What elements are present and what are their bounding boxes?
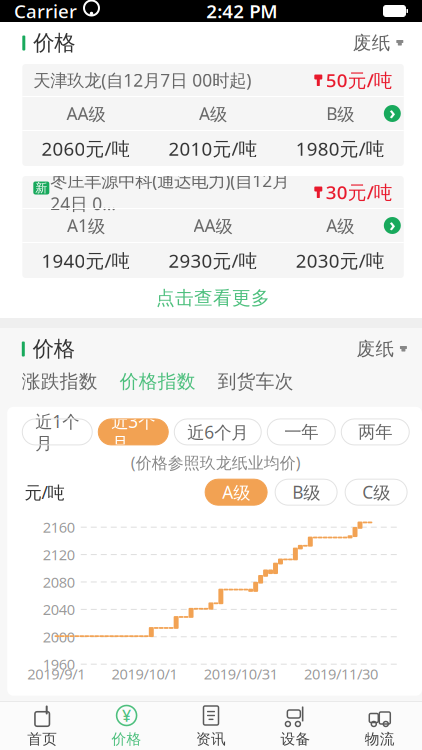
staticText: 元/吨 xyxy=(24,481,64,504)
staticText: 2000 xyxy=(43,627,75,646)
staticText: 价格 xyxy=(33,336,75,362)
staticText: 废纸 xyxy=(353,31,391,54)
staticText: 枣庄丰源中科(通达电力)(自12月24日 0… xyxy=(50,169,289,215)
staticText: 2019/10/31 xyxy=(204,664,278,684)
staticText: › xyxy=(389,101,395,124)
button[interactable]: 天津玖龙(自12月7日 00时起) xyxy=(22,64,404,166)
staticText: A级 xyxy=(222,481,250,504)
button[interactable]: 废纸 xyxy=(356,333,407,364)
button[interactable]: 近1个月 xyxy=(22,419,92,445)
staticText: 2160 xyxy=(43,517,75,537)
staticText: 2010元/吨 xyxy=(169,136,258,161)
staticText: AA级 xyxy=(194,214,233,237)
button[interactable]: 资讯 xyxy=(169,702,253,750)
staticText: C级 xyxy=(362,481,390,504)
staticText: 2120 xyxy=(43,545,75,564)
staticText: 1980元/吨 xyxy=(296,136,385,161)
staticText: A1级 xyxy=(67,214,105,237)
staticText: 设备 xyxy=(280,730,310,748)
button[interactable]: 设备 xyxy=(253,702,338,750)
staticText: 2080 xyxy=(43,572,75,592)
staticText: 2930元/吨 xyxy=(169,248,258,273)
button[interactable]: C级 xyxy=(345,479,407,505)
button[interactable]: 一年 xyxy=(267,419,335,445)
staticText: 50元/吨 xyxy=(326,68,393,92)
staticText: 首页 xyxy=(27,730,57,748)
staticText: B级 xyxy=(292,481,320,504)
staticText: 近3个月 xyxy=(111,410,155,454)
staticText: 物流 xyxy=(365,730,395,748)
button[interactable]: 到货车次 xyxy=(218,370,294,393)
staticText: 1940元/吨 xyxy=(41,248,130,273)
staticText: 2030元/吨 xyxy=(296,248,385,273)
staticText: 两年 xyxy=(358,421,392,443)
button[interactable]: A级 xyxy=(205,479,267,505)
button[interactable]: 涨跌指数 xyxy=(22,370,98,393)
staticText: 天津玖龙(自12月7日 00时起) xyxy=(33,68,251,91)
staticText: 30元/吨 xyxy=(326,180,393,204)
staticText: 2060元/吨 xyxy=(41,136,130,161)
staticText: 2040 xyxy=(43,600,75,619)
button[interactable]: 近6个月 xyxy=(174,419,261,445)
button[interactable]: 废纸 xyxy=(353,27,404,58)
staticText: 2019/9/1 xyxy=(27,664,85,684)
staticText: 近1个月 xyxy=(35,410,79,454)
staticText: 2:42 PM xyxy=(206,0,277,23)
staticText: 1960 xyxy=(43,654,75,674)
button[interactable]: 新 xyxy=(22,176,404,278)
button[interactable]: 价格指数 xyxy=(120,370,196,393)
button[interactable]: 点击查看更多 xyxy=(0,278,422,318)
staticText: › xyxy=(389,213,395,236)
staticText: A级 xyxy=(199,102,227,125)
staticText: 点击查看更多 xyxy=(156,286,270,309)
staticText: 价格 xyxy=(33,30,75,56)
staticText: AA级 xyxy=(66,102,105,125)
staticText: B级 xyxy=(326,102,354,125)
button[interactable]: 两年 xyxy=(341,419,409,445)
staticText: 一年 xyxy=(284,421,318,443)
staticText: 近6个月 xyxy=(187,420,248,443)
button[interactable]: B级 xyxy=(275,479,337,505)
staticText: 2019/11/30 xyxy=(304,664,378,684)
button[interactable]: 近3个月 xyxy=(98,419,168,445)
button[interactable]: 物流 xyxy=(338,702,422,750)
staticText: Carrier xyxy=(14,0,77,23)
staticText: 资讯 xyxy=(196,730,226,748)
button[interactable]: ¥ xyxy=(84,702,169,750)
staticText xyxy=(77,0,83,26)
staticText: 到货车次 xyxy=(218,370,294,393)
staticText: A级 xyxy=(326,214,354,237)
staticText: 新 xyxy=(35,181,47,195)
staticText: 涨跌指数 xyxy=(22,370,98,393)
staticText: 价格指数 xyxy=(120,370,196,393)
staticText: 2019/10/1 xyxy=(111,664,177,684)
staticText: 废纸 xyxy=(356,337,394,360)
staticText: (价格参照玖龙纸业均价) xyxy=(131,452,301,473)
staticText: ¥ xyxy=(122,705,131,726)
staticText: 价格 xyxy=(112,730,142,748)
button[interactable]: 首页 xyxy=(0,702,84,750)
